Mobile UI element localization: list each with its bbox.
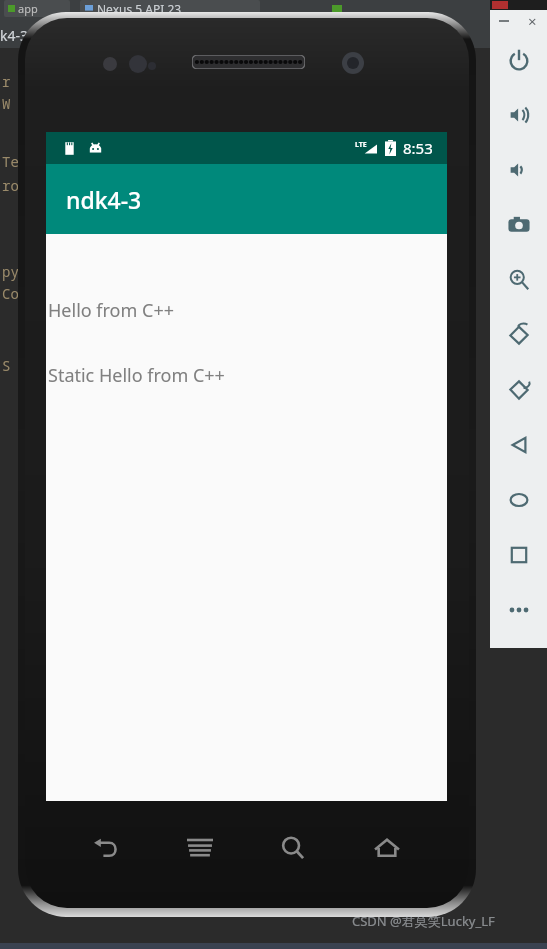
button[interactable]: Minimize — [490, 10, 518, 32]
staticText: Static Hello from C++ — [48, 363, 225, 388]
button[interactable]: Power — [490, 32, 547, 87]
button[interactable]: Menu — [172, 824, 228, 872]
staticText: W — [2, 94, 11, 113]
staticText: Hello from C++ — [48, 298, 174, 323]
button[interactable]: Home — [359, 824, 415, 872]
button[interactable]: Back — [78, 824, 134, 872]
button[interactable]: Volume down — [490, 142, 547, 197]
staticText: k4-3 — [0, 26, 28, 45]
button[interactable]: Rotate left — [490, 307, 547, 362]
staticText: LTE — [355, 140, 367, 150]
button[interactable]: Home — [490, 472, 547, 527]
button[interactable]: More — [490, 582, 547, 637]
button[interactable]: Back — [490, 417, 547, 472]
button[interactable]: Rotate right — [490, 362, 547, 417]
button[interactable]: Close — [518, 10, 546, 32]
button[interactable]: Volume up — [490, 87, 547, 142]
staticText: ndk4-3 — [66, 184, 142, 215]
staticText: S — [2, 356, 11, 375]
button[interactable]: Nexus 5 API 23 — [80, 0, 260, 17]
staticText: app — [18, 1, 38, 16]
staticText: ro — [2, 176, 19, 195]
staticText: × — [528, 11, 537, 31]
button[interactable]: Overview — [490, 527, 547, 582]
staticText: r A — [2, 72, 36, 91]
button[interactable]: app — [4, 0, 70, 17]
button[interactable]: Search — [265, 824, 321, 872]
staticText: py — [2, 262, 19, 281]
staticText: × — [36, 28, 45, 47]
button[interactable]: Screenshot — [490, 197, 547, 252]
staticText: Co — [2, 284, 19, 303]
staticText: CSDN @君莫笑Lucky_LF — [352, 912, 495, 930]
staticText: Te — [2, 152, 19, 171]
button[interactable]: Zoom — [490, 252, 547, 307]
staticText: Nexus 5 API 23 — [97, 1, 182, 17]
staticText: 8:53 — [403, 138, 433, 158]
